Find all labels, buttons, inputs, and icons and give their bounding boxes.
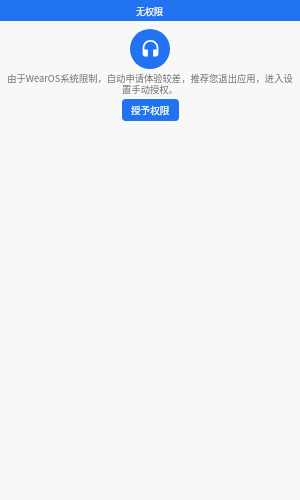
staticText: 由于WearOS系统限制，自动申请体验较差，推荐您退出应用，进入设置手动授权。: [7, 71, 293, 95]
staticText: 无权限: [136, 5, 164, 18]
other: Headset: [140, 39, 161, 60]
staticText: 授予权限: [131, 103, 170, 117]
button[interactable]: 授予权限: [122, 99, 179, 121]
